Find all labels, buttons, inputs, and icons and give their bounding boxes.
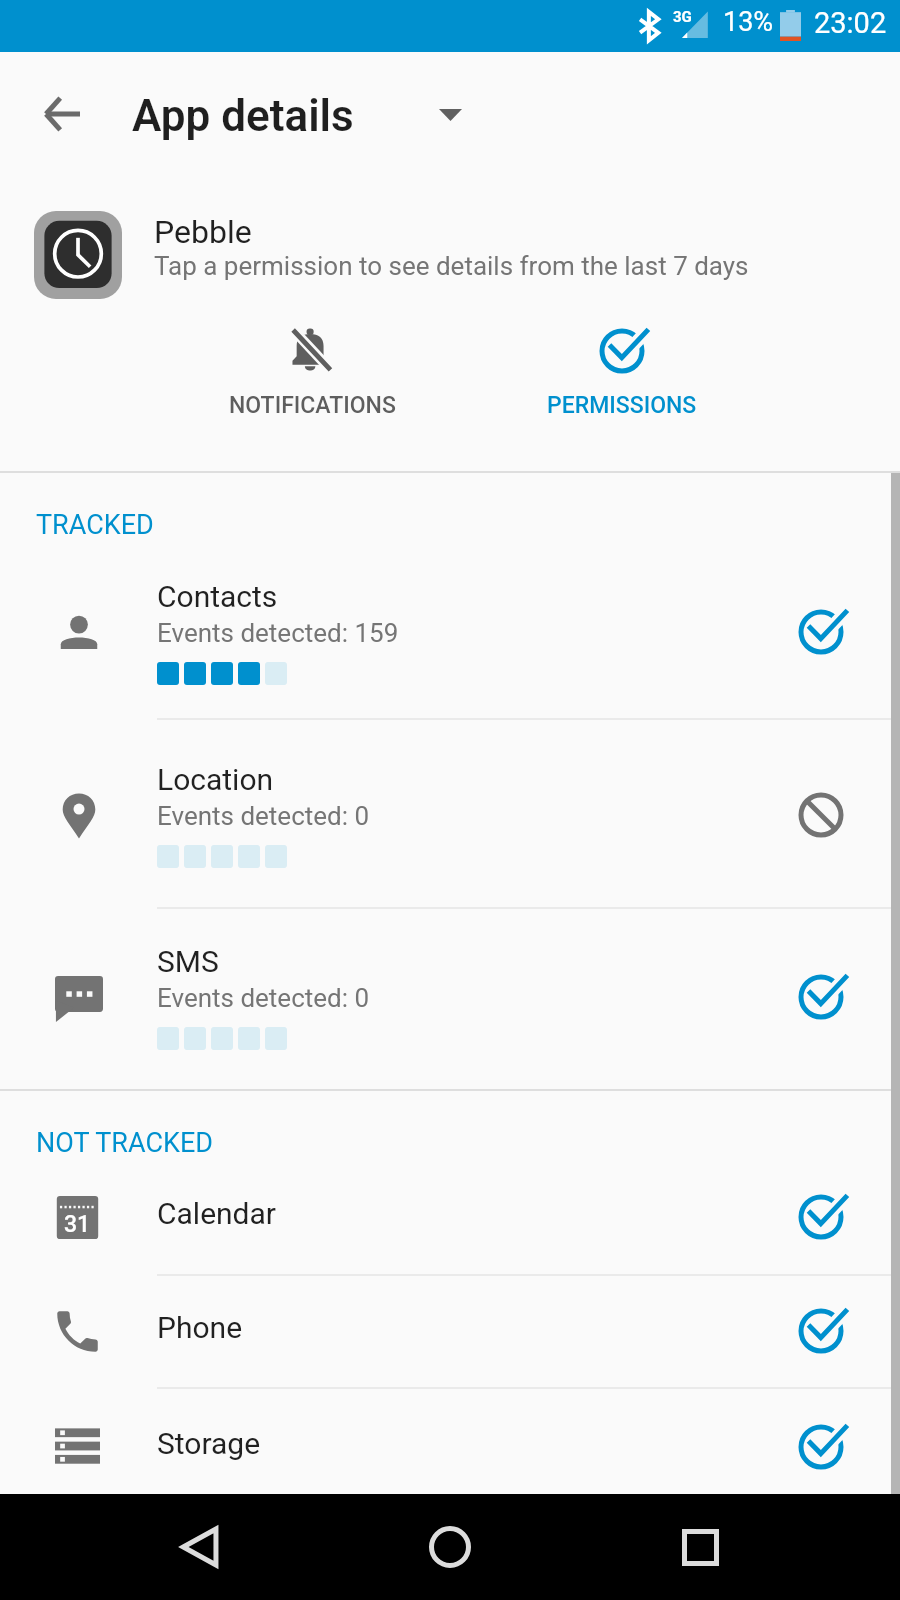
button[interactable]: Contacts xyxy=(0,530,900,719)
staticText: 23:02 xyxy=(814,6,887,40)
button[interactable]: SMS xyxy=(0,908,900,1089)
button[interactable]: Recent apps xyxy=(650,1497,750,1597)
staticText: Events detected: 159 xyxy=(157,618,399,648)
staticText: Location xyxy=(157,762,274,797)
staticText: Storage xyxy=(157,1426,261,1461)
button[interactable]: Navigate up xyxy=(14,66,109,162)
staticText: Tap a permission to see details from the… xyxy=(154,251,749,281)
staticText: Contacts xyxy=(157,579,278,614)
button[interactable]: Show menu xyxy=(414,84,486,146)
button[interactable]: Location xyxy=(0,719,900,908)
button[interactable]: Storage xyxy=(0,1388,900,1494)
staticText: 3G xyxy=(673,8,692,26)
staticText: 13% xyxy=(723,6,774,38)
staticText: Pebble xyxy=(154,213,252,251)
button[interactable]: 31 xyxy=(0,1162,900,1275)
staticText: 31 xyxy=(64,1211,91,1238)
staticText: PERMISSIONS xyxy=(547,392,697,419)
button[interactable]: Back xyxy=(150,1497,250,1597)
staticText: NOTIFICATIONS xyxy=(229,392,396,419)
staticText: App details xyxy=(132,90,354,142)
staticText: Events detected: 0 xyxy=(157,983,370,1013)
staticText: TRACKED xyxy=(36,509,154,541)
button[interactable]: NOTIFICATIONS xyxy=(147,312,477,424)
button[interactable]: Phone xyxy=(0,1275,900,1388)
staticText: NOT TRACKED xyxy=(36,1127,214,1159)
staticText: SMS xyxy=(157,944,219,979)
staticText: Events detected: 0 xyxy=(157,801,370,831)
staticText: Phone xyxy=(157,1310,243,1345)
button[interactable]: PERMISSIONS xyxy=(457,312,787,424)
staticText: Calendar xyxy=(157,1196,277,1231)
button[interactable]: Home xyxy=(400,1497,500,1597)
